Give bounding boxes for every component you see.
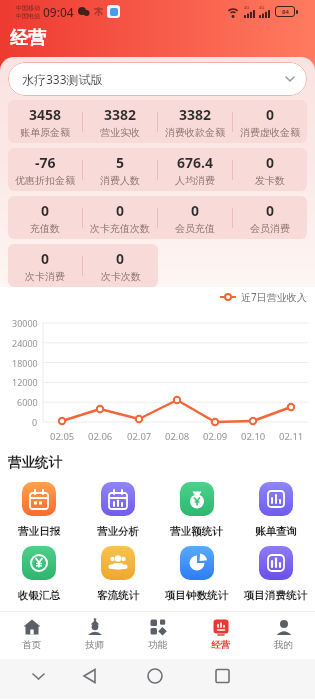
staticText: 中国移动 [16, 4, 40, 12]
button[interactable]: 3382 [83, 105, 157, 139]
staticText: 09:04 [43, 4, 74, 20]
button[interactable]: 营业日报 [0, 482, 78, 538]
staticText: 账单查询 [255, 525, 297, 538]
staticText: 3382 [104, 105, 137, 124]
button[interactable]: 项目钟数统计 [157, 546, 236, 602]
staticText: 0 [266, 105, 275, 124]
staticText: 客流统计 [97, 589, 139, 602]
staticText: 会员充值 [175, 222, 215, 235]
button[interactable]: 0 [233, 105, 307, 139]
staticText: 优惠折扣金额 [15, 174, 75, 187]
button[interactable]: 收银汇总 [0, 546, 78, 602]
button[interactable]: 经营 [189, 612, 252, 659]
staticText: 84 [282, 8, 289, 16]
button[interactable]: 功能 [126, 612, 189, 659]
staticText: 0 [116, 249, 125, 268]
staticText: 30000 [12, 317, 38, 329]
staticText: 水疗333测试版 [22, 71, 103, 87]
staticText: 技师 [85, 639, 104, 651]
button[interactable]: 营业分析 [78, 482, 157, 538]
staticText: -76 [35, 153, 56, 172]
button[interactable]: 技师 [63, 612, 126, 659]
staticText: 营业统计 [8, 454, 62, 471]
staticText: 18000 [12, 357, 38, 369]
staticText: 02.05 [50, 430, 75, 443]
button[interactable]: 0 [233, 153, 307, 187]
staticText: 我的 [274, 639, 293, 651]
staticText: 发卡数 [255, 174, 285, 187]
staticText: 4G [259, 5, 265, 10]
staticText: 人均消费 [175, 174, 215, 187]
staticText: 676.4 [177, 153, 213, 172]
button[interactable]: 首页 [0, 612, 63, 659]
staticText: 首页 [22, 639, 41, 651]
button[interactable]: 0 [233, 201, 307, 235]
staticText: 会员消费 [250, 222, 290, 235]
staticText: 4G [244, 5, 250, 10]
staticText: 02.07 [127, 430, 152, 443]
button[interactable]: 0 [8, 201, 82, 235]
button[interactable]: 项目消费统计 [236, 546, 315, 602]
staticText: 0 [41, 249, 50, 268]
staticText: 0 [266, 201, 275, 220]
staticText: 02.08 [165, 430, 190, 443]
staticText: 项目消费统计 [244, 589, 307, 602]
staticText: 消费收款金额 [165, 126, 225, 139]
button[interactable]: 0 [158, 201, 232, 235]
button[interactable]: 3382 [158, 105, 232, 139]
staticText: 0 [116, 201, 125, 220]
staticText: 3458 [29, 105, 62, 124]
staticText: 6000 [17, 396, 38, 408]
staticText: 0 [266, 153, 275, 172]
button[interactable]: 0 [8, 249, 82, 283]
button[interactable]: 3458 [8, 105, 82, 139]
button[interactable]: 水疗333测试版 [8, 62, 307, 96]
staticText: 0 [32, 416, 38, 428]
staticText: 次卡消费 [25, 270, 65, 283]
staticText: 经营 [211, 639, 230, 651]
staticText: 02.11 [279, 430, 304, 443]
staticText: 次卡充值次数 [90, 222, 150, 235]
staticText: 充值数 [30, 222, 60, 235]
staticText: 次卡次数 [101, 270, 141, 283]
staticText: 消费虚收金额 [240, 126, 300, 139]
staticText: 营业日报 [18, 525, 60, 538]
staticText: 中国电信 [16, 12, 40, 20]
button[interactable]: 营业额统计 [157, 482, 236, 538]
button[interactable]: 676.4 [158, 153, 232, 187]
staticText: 账单原金额 [20, 126, 70, 139]
button[interactable]: -76 [8, 153, 82, 187]
staticText: 5 [116, 153, 125, 172]
staticText: 功能 [148, 639, 167, 651]
button[interactable]: 0 [83, 201, 157, 235]
staticText: 0 [41, 201, 50, 220]
staticText: 24000 [12, 337, 38, 349]
button[interactable]: 客流统计 [78, 546, 157, 602]
staticText: 02.09 [203, 430, 228, 443]
staticText: 02.10 [241, 430, 266, 443]
staticText: 02.06 [88, 430, 113, 443]
button[interactable]: 我的 [252, 612, 315, 659]
staticText: 项目钟数统计 [165, 589, 228, 602]
button[interactable]: 0 [83, 249, 158, 283]
button[interactable]: 账单查询 [236, 482, 315, 538]
staticText: 0 [191, 201, 200, 220]
staticText: 营业额统计 [170, 525, 223, 538]
staticText: 12000 [12, 376, 38, 388]
staticText: 3382 [179, 105, 212, 124]
staticText: 营业分析 [97, 525, 139, 538]
staticText: 收银汇总 [18, 589, 60, 602]
staticText: 消费人数 [100, 174, 140, 187]
staticText: 经营 [10, 27, 46, 50]
staticText: 近7日营业收入 [241, 290, 307, 304]
staticText: 营业实收 [100, 126, 140, 139]
button[interactable]: 5 [83, 153, 157, 187]
